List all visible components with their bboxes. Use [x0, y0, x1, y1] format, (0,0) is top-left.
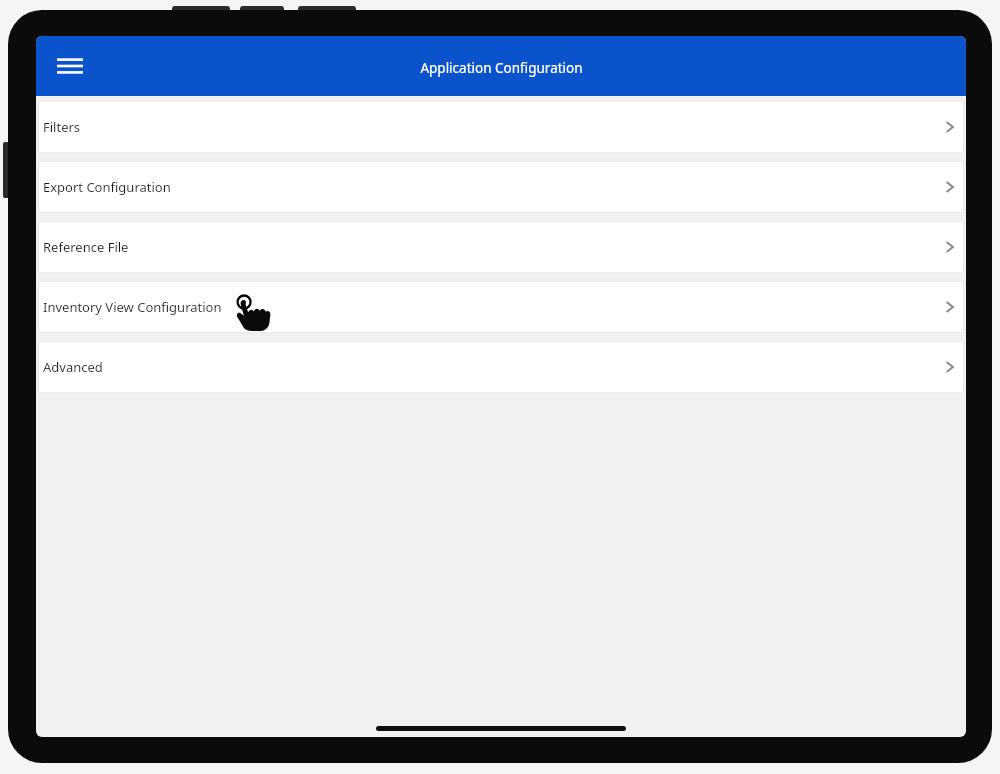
staticText: Advanced [43, 358, 103, 376]
button[interactable]: Open navigation menu [42, 38, 98, 94]
button[interactable]: Filters [38, 101, 964, 153]
button[interactable]: Inventory View Configuration [38, 281, 964, 333]
staticText: Export Configuration [43, 178, 171, 196]
staticText: Application Configuration [420, 59, 583, 77]
button[interactable]: Advanced [38, 341, 964, 393]
button[interactable]: Reference File [38, 221, 964, 273]
staticText: Reference File [43, 238, 129, 256]
staticText: Inventory View Configuration [43, 298, 222, 316]
staticText: Filters [43, 118, 81, 136]
button[interactable]: Export Configuration [38, 161, 964, 213]
